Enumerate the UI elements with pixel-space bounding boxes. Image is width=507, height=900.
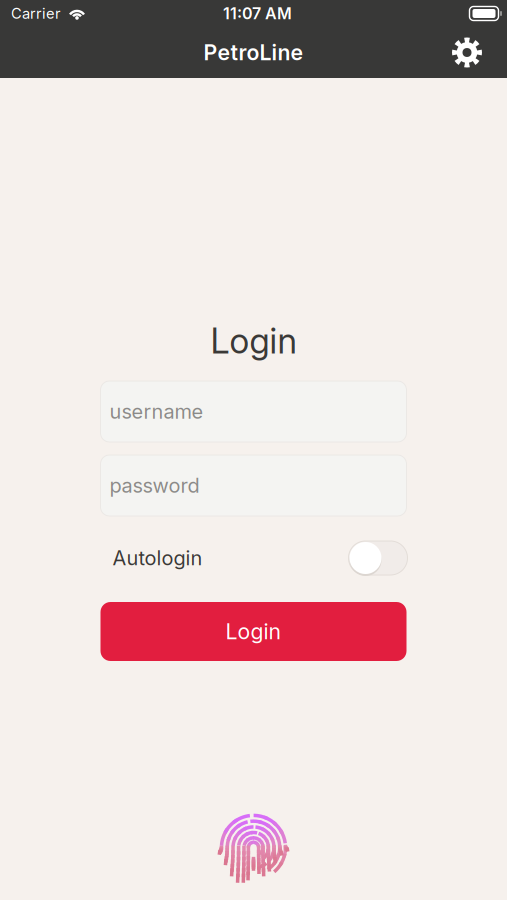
staticText: username	[109, 399, 203, 424]
staticText: Autologin	[112, 546, 202, 570]
button[interactable]: Autologin	[100, 535, 406, 581]
button[interactable]: Settings	[438, 29, 507, 75]
staticText: Carrier	[11, 5, 61, 22]
button[interactable]: Login	[100, 602, 406, 661]
staticText: password	[109, 473, 199, 498]
button[interactable]: password	[100, 455, 406, 516]
button[interactable]: Sign in with Touch ID	[213, 811, 293, 891]
staticText: Login	[225, 619, 281, 644]
staticText: Login	[210, 320, 296, 362]
button[interactable]: username	[100, 381, 406, 442]
staticText: 11:07 AM	[223, 4, 292, 23]
staticText: PetroLine	[203, 40, 303, 65]
